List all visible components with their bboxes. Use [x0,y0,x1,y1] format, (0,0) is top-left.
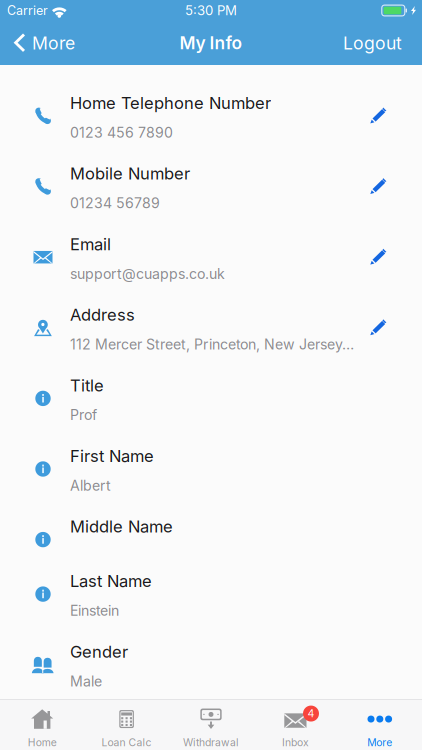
staticText: My Info [179,32,242,53]
button[interactable]: Loan Calc [84,699,169,750]
staticText: Middle Name [70,517,173,537]
button[interactable]: More [338,699,422,750]
button[interactable]: Middle Name [0,489,422,543]
button[interactable]: Mobile Number [0,136,422,206]
staticText: Einstein [70,602,119,619]
staticText: Carrier [7,3,48,18]
staticText: Home Telephone Number [70,93,271,113]
staticText: 01234 56789 [70,195,160,212]
staticText: Inbox [282,736,309,749]
staticText: 112 Mercer Street, Princeton, New Jersey… [70,336,354,353]
staticText: Email [70,234,111,254]
button[interactable]: Withdrawal [169,699,253,750]
staticText: Logout [343,32,402,54]
staticText: Address [70,305,135,325]
staticText: Home [28,736,57,749]
button[interactable]: Address [0,277,422,347]
button[interactable]: First Name [0,418,422,489]
staticText: Gender [70,642,128,662]
staticText: First Name [70,446,154,466]
staticText: Mobile Number [70,164,190,184]
staticText: Prof [70,406,97,423]
button[interactable]: More [0,21,85,65]
staticText: More [367,736,392,749]
staticText: Withdrawal [183,736,239,749]
staticText: 4 [307,707,314,720]
button[interactable]: 4 [253,699,338,750]
staticText: Last Name [70,571,152,591]
button[interactable]: Home [0,699,84,750]
staticText: support@cuapps.co.uk [70,265,225,282]
staticText: Loan Calc [102,736,152,749]
staticText: Male [70,673,102,690]
staticText: Albert [70,477,111,494]
button[interactable]: Home Telephone Number [0,65,422,136]
button[interactable]: Email [0,206,422,277]
staticText: 0123 456 7890 [70,124,173,141]
staticText: More [32,32,75,54]
button[interactable]: Gender [0,614,422,684]
staticText: Title [70,375,104,395]
button[interactable]: Last Name [0,543,422,614]
staticText: 5:30 PM [185,2,237,18]
button[interactable]: Title [0,347,422,418]
button[interactable]: Logout [323,21,422,65]
